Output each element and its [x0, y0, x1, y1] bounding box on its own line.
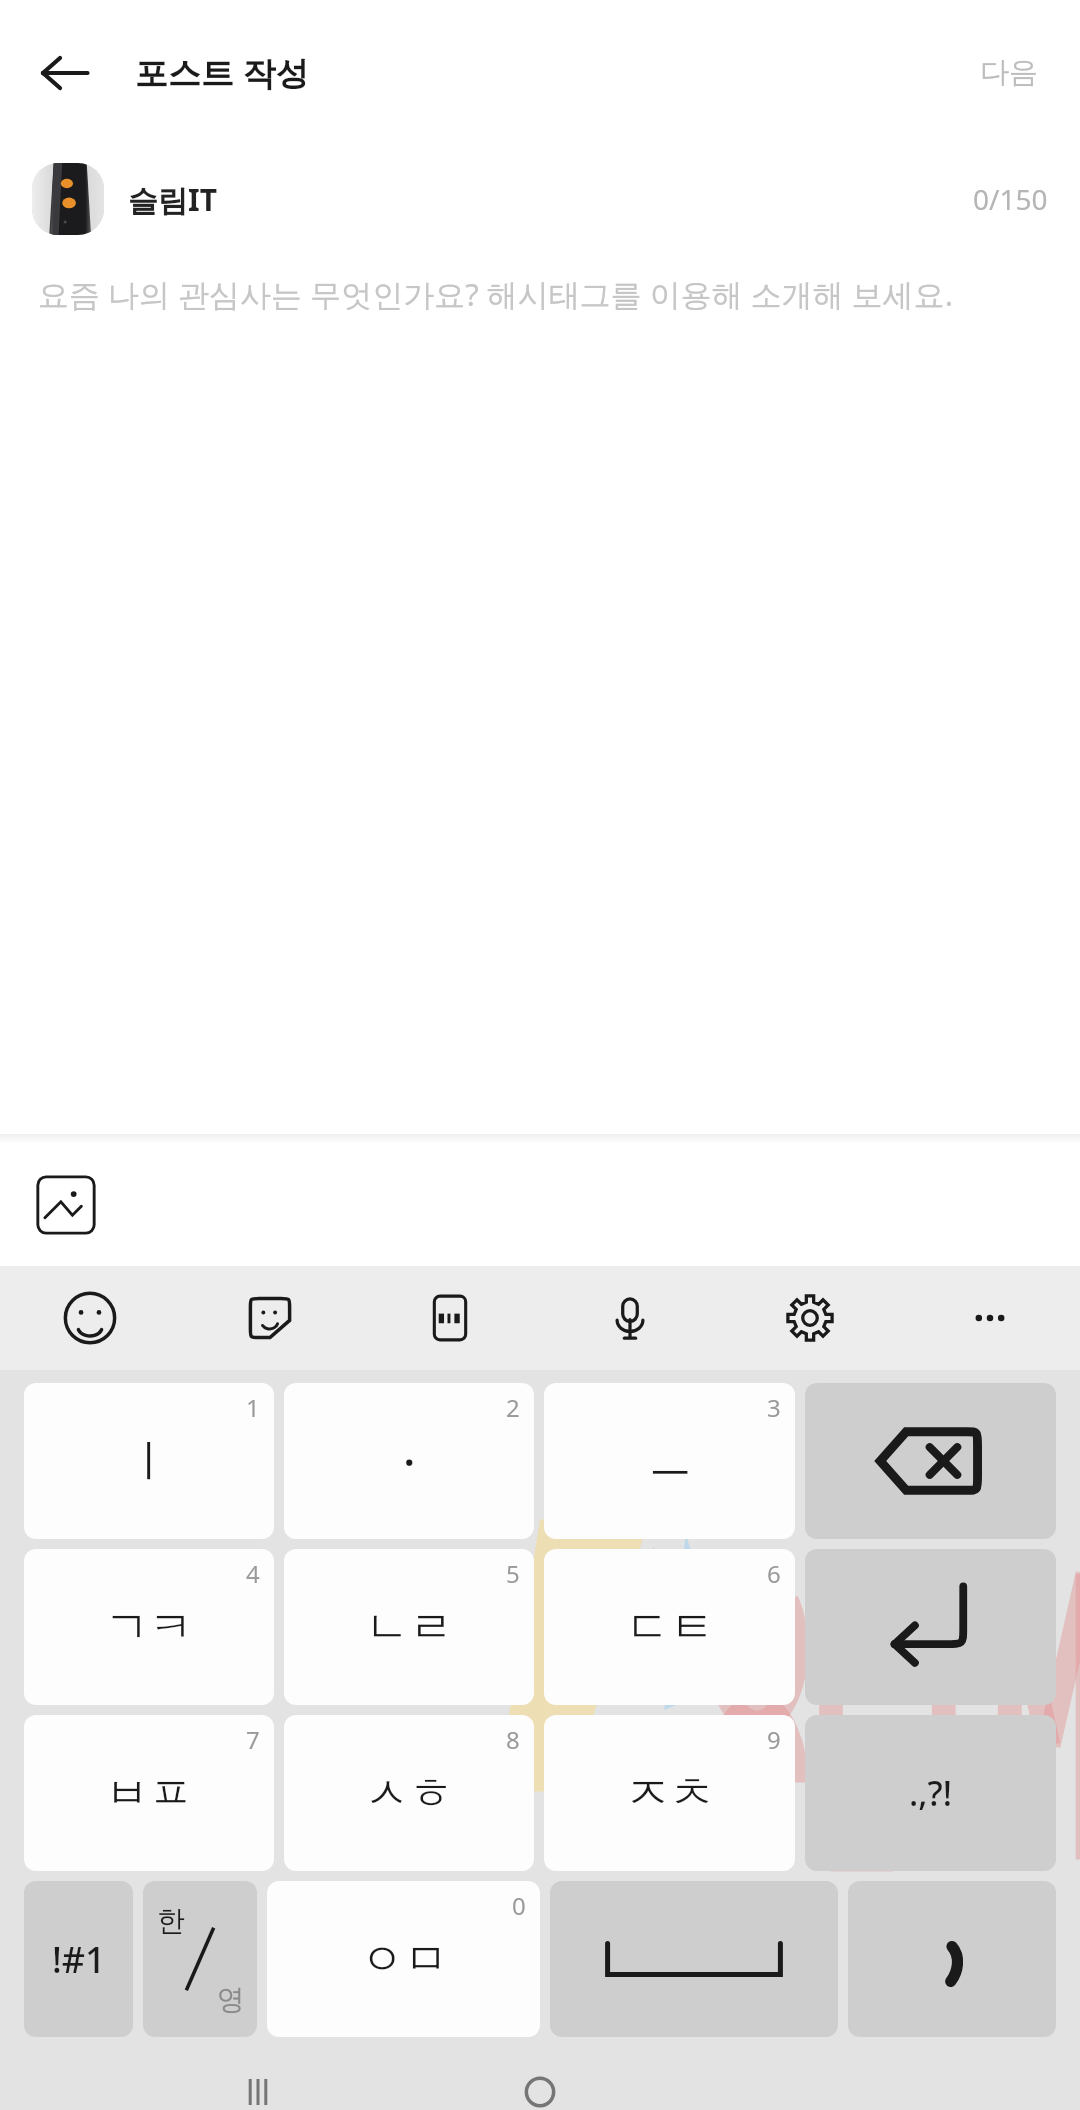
staticText: 6 — [767, 1557, 781, 1590]
staticText: 2 — [506, 1391, 520, 1424]
button[interactable]: Sticker — [180, 1266, 360, 1370]
button[interactable]: Add image — [28, 1167, 104, 1243]
button[interactable]: 요즘 나의 관심사는 무엇인가요? 해시태그를 이용해 소개해 보세요. — [0, 253, 1080, 1134]
staticText: 0/150 — [973, 180, 1048, 218]
staticText: ㄷㅌ — [626, 1600, 714, 1655]
button[interactable]: Recents — [233, 2074, 283, 2110]
staticText: ㅣ — [127, 1434, 171, 1489]
staticText: 다음 — [980, 54, 1038, 91]
button[interactable]: More options — [900, 1266, 1080, 1370]
staticText: ㄱㅋ — [105, 1600, 193, 1655]
staticText: 0 — [512, 1889, 526, 1922]
staticText: ㅇㅁ — [360, 1932, 448, 1987]
staticText: .,?! — [909, 1770, 953, 1816]
staticText: 영 — [217, 1982, 245, 2017]
staticText: · — [403, 1430, 416, 1493]
button[interactable]: 6 — [544, 1549, 795, 1705]
button[interactable]: 0 — [267, 1881, 540, 2037]
button[interactable]: Comma — [848, 1881, 1056, 2037]
button[interactable]: 2 — [284, 1383, 534, 1539]
staticText: 8 — [506, 1723, 520, 1756]
button[interactable]: Voice input — [540, 1266, 720, 1370]
staticText: 5 — [506, 1557, 520, 1590]
staticText: ㅈㅊ — [626, 1766, 714, 1821]
staticText: 요즘 나의 관심사는 무엇인가요? 해시태그를 이용해 소개해 보세요. — [38, 273, 954, 315]
staticText: !#1 — [52, 1935, 106, 1984]
staticText: 한 — [157, 1903, 185, 1938]
button[interactable]: 9 — [544, 1715, 795, 1871]
button[interactable]: .,?! — [805, 1715, 1056, 1871]
button[interactable]: 5 — [284, 1549, 534, 1705]
staticText: 4 — [246, 1557, 260, 1590]
button[interactable]: Korean English toggle — [143, 1881, 257, 2037]
staticText: 7 — [246, 1723, 260, 1756]
staticText: ㅡ — [648, 1434, 692, 1489]
staticText: 3 — [767, 1391, 781, 1424]
button[interactable]: Back — [22, 30, 108, 116]
button[interactable]: 1 — [24, 1383, 274, 1539]
button[interactable]: Settings — [720, 1266, 900, 1370]
button[interactable]: 7 — [24, 1715, 274, 1871]
button[interactable]: Enter — [805, 1549, 1056, 1705]
button[interactable]: 다음 — [938, 32, 1080, 113]
staticText: 9 — [767, 1723, 781, 1756]
staticText: 1 — [246, 1391, 260, 1424]
button[interactable]: Space — [550, 1881, 838, 2037]
staticText: ㄴㄹ — [365, 1600, 453, 1655]
button[interactable]: Emoji — [0, 1266, 180, 1370]
button[interactable]: Profile photo — [32, 163, 104, 235]
button[interactable]: GIF — [360, 1266, 540, 1370]
staticText: ㅂㅍ — [105, 1766, 193, 1821]
button[interactable]: 4 — [24, 1549, 274, 1705]
staticText: ㅅㅎ — [365, 1766, 453, 1821]
button[interactable]: 3 — [544, 1383, 795, 1539]
button[interactable]: Home — [515, 2074, 565, 2110]
button[interactable]: Backspace — [805, 1383, 1056, 1539]
staticText: 포스트 작성 — [135, 50, 309, 95]
button[interactable]: !#1 — [24, 1881, 133, 2037]
staticText: 슬림IT — [128, 179, 217, 220]
button[interactable]: 8 — [284, 1715, 534, 1871]
